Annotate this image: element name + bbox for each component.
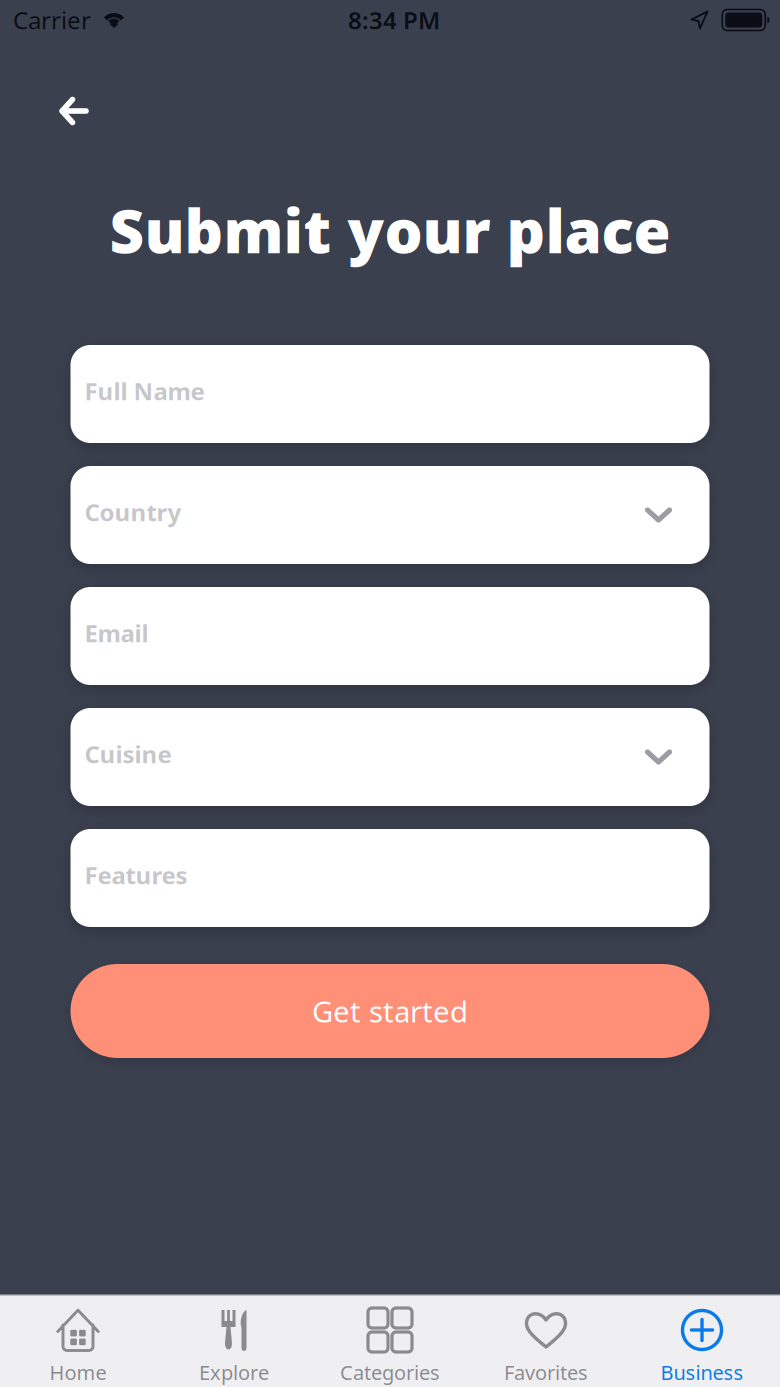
button[interactable]: Categories: [312, 1294, 468, 1387]
button[interactable]: Home: [0, 1294, 156, 1387]
staticText: Email: [84, 617, 148, 649]
button[interactable]: Features: [70, 829, 709, 927]
staticText: Categories: [340, 1359, 440, 1386]
button[interactable]: Favorites: [468, 1294, 624, 1387]
button[interactable]: Get started: [70, 964, 709, 1058]
staticText: Business: [660, 1359, 743, 1386]
button[interactable]: Cuisine: [70, 708, 709, 806]
staticText: Submit your place: [109, 190, 670, 270]
staticText: Cuisine: [84, 738, 171, 770]
staticText: 8:34 PM: [348, 4, 440, 36]
staticText: Country: [84, 496, 181, 528]
staticText: Home: [49, 1359, 106, 1386]
staticText: Full Name: [84, 375, 204, 407]
staticText: Get started: [312, 991, 468, 1030]
button[interactable]: Email: [70, 587, 709, 685]
button[interactable]: Country: [70, 466, 709, 564]
button[interactable]: Explore: [156, 1294, 312, 1387]
button[interactable]: Full Name: [70, 345, 709, 443]
staticText: Features: [84, 859, 187, 891]
staticText: Explore: [199, 1359, 269, 1386]
button[interactable]: Business: [624, 1294, 780, 1387]
staticText: Carrier: [13, 4, 91, 36]
button[interactable]: Back: [42, 79, 106, 143]
staticText: Favorites: [504, 1359, 588, 1386]
